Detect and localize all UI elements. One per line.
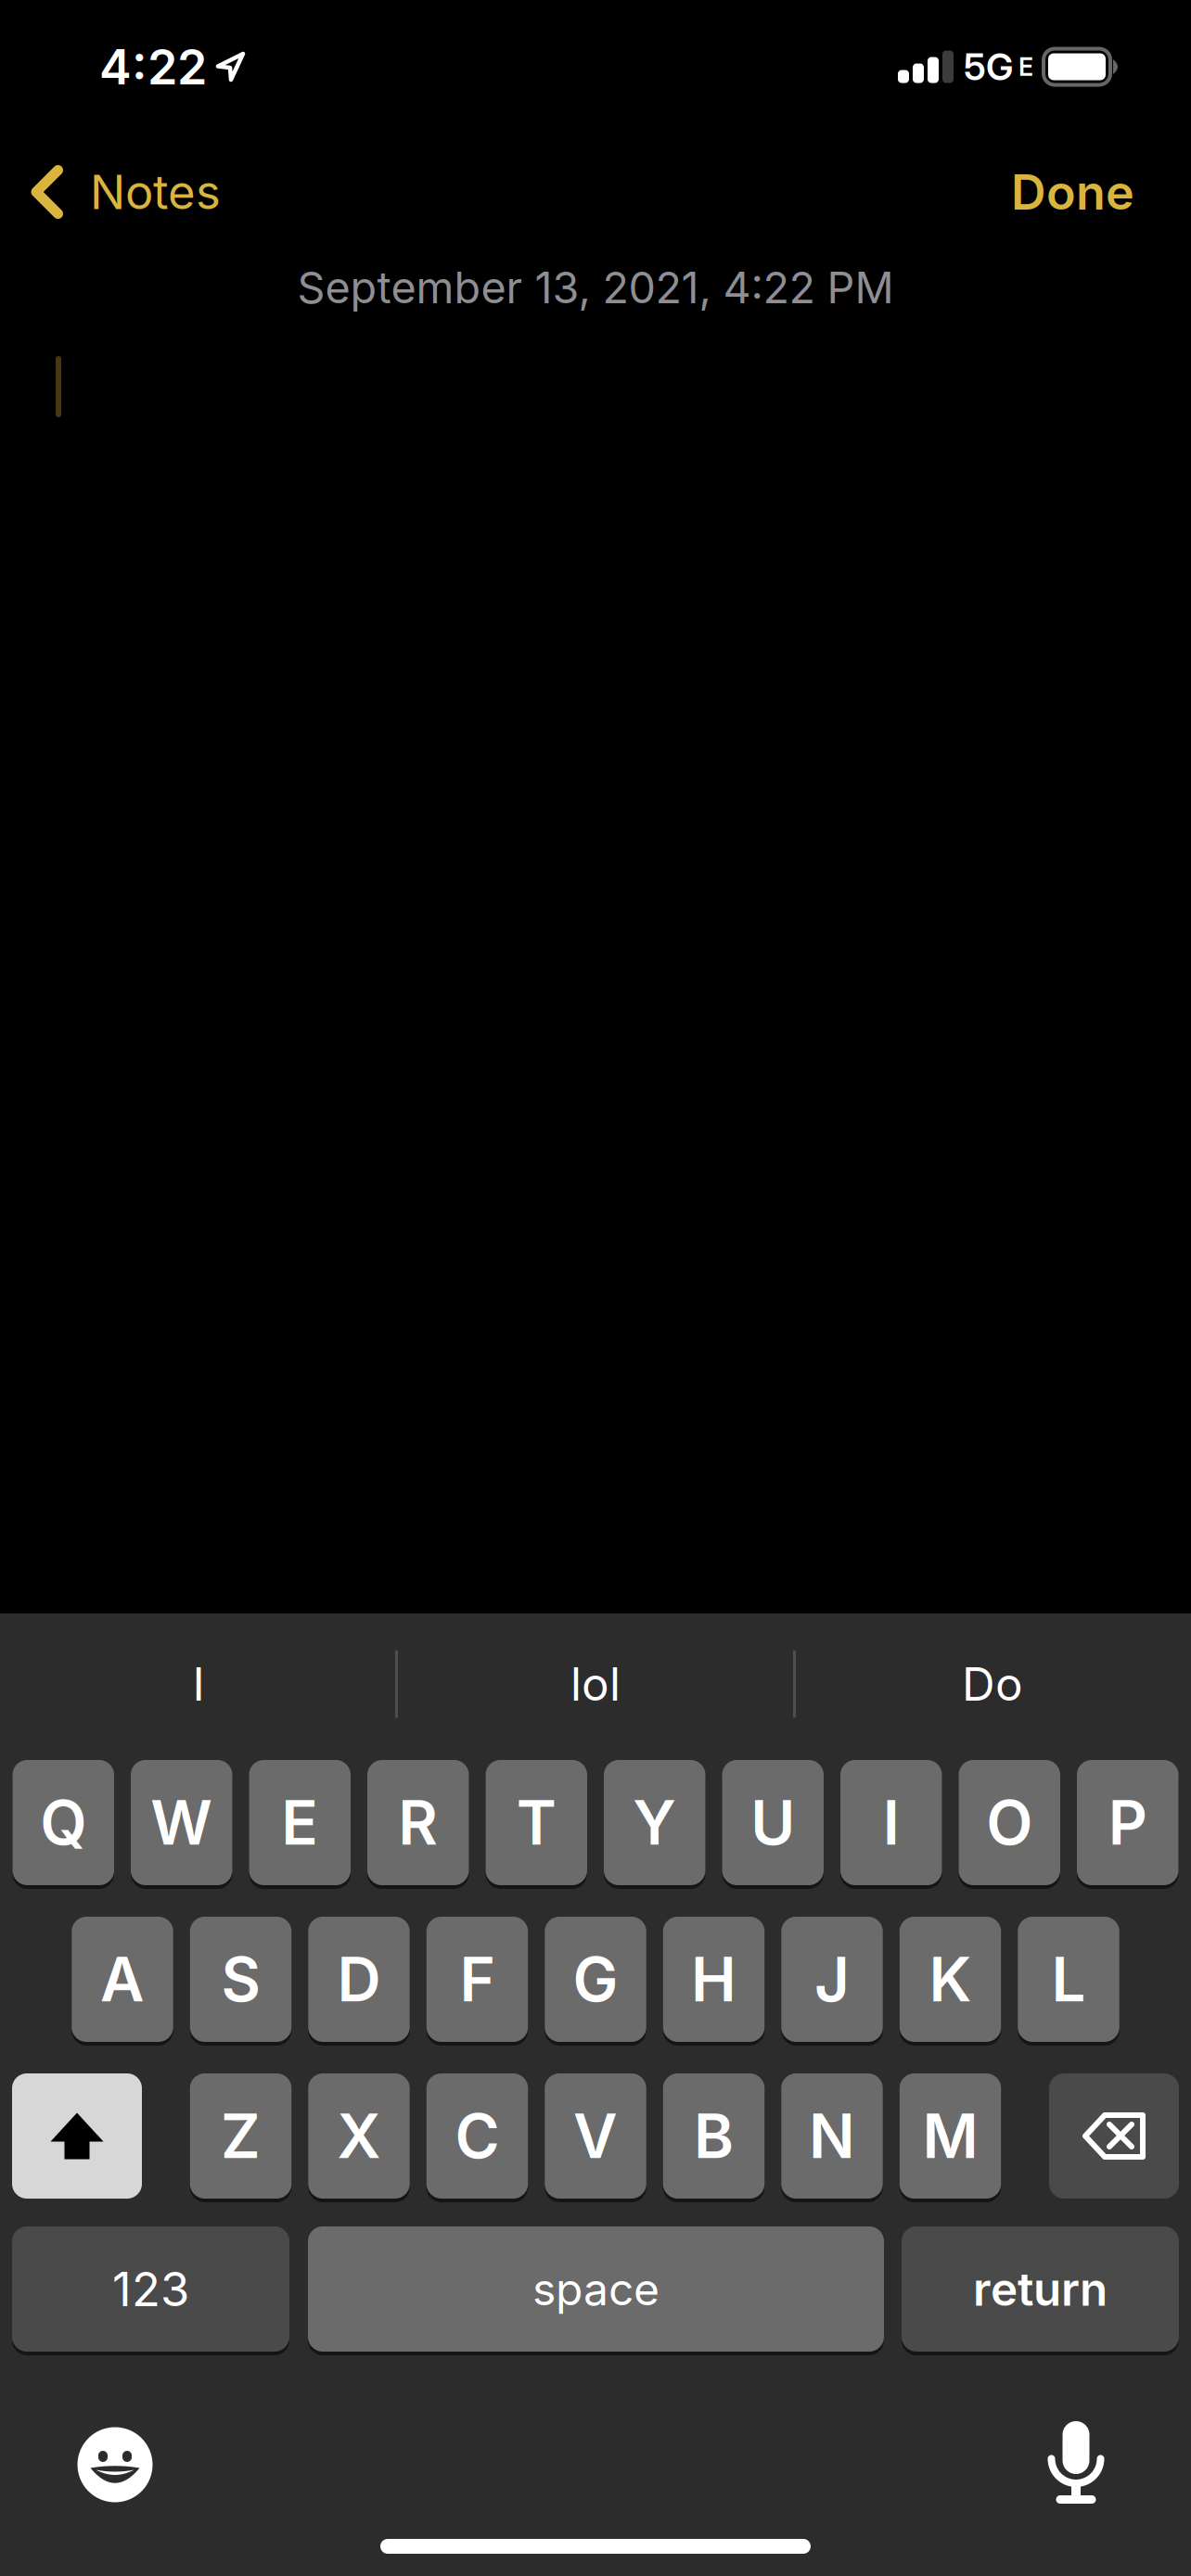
button[interactable]: N bbox=[781, 2073, 883, 2199]
staticText: G bbox=[573, 1943, 618, 2016]
staticText: Done bbox=[1011, 163, 1134, 221]
button[interactable]: I bbox=[0, 1633, 397, 1735]
staticText: 4:22 bbox=[99, 38, 207, 96]
staticText: X bbox=[337, 2099, 381, 2173]
staticText: S bbox=[221, 1943, 260, 2016]
staticText: N bbox=[809, 2099, 855, 2173]
staticText: O bbox=[986, 1786, 1033, 1859]
staticText: M bbox=[922, 2099, 978, 2173]
button[interactable]: E bbox=[249, 1760, 351, 1885]
button[interactable]: Shift bbox=[12, 2073, 142, 2199]
staticText: V bbox=[573, 2099, 618, 2173]
staticText: H bbox=[691, 1943, 736, 2016]
button[interactable]: return bbox=[902, 2226, 1179, 2352]
staticText: 5G bbox=[964, 44, 1013, 89]
button[interactable]: space bbox=[308, 2226, 884, 2352]
staticText: W bbox=[150, 1786, 213, 1859]
staticText: B bbox=[694, 2099, 734, 2173]
button[interactable]: U bbox=[722, 1760, 824, 1885]
button[interactable]: C bbox=[426, 2073, 528, 2199]
staticText: lol bbox=[570, 1656, 621, 1712]
staticText: Q bbox=[40, 1786, 86, 1859]
staticText: P bbox=[1108, 1786, 1147, 1859]
staticText: Do bbox=[962, 1656, 1023, 1712]
staticText: Y bbox=[633, 1786, 676, 1859]
button[interactable]: Dictate bbox=[1024, 2411, 1128, 2515]
button[interactable]: Done bbox=[983, 147, 1162, 236]
button[interactable]: lol bbox=[397, 1633, 794, 1735]
button[interactable]: B bbox=[663, 2073, 765, 2199]
button[interactable]: Y bbox=[604, 1760, 705, 1885]
button[interactable]: Z bbox=[190, 2073, 292, 2199]
staticText: I bbox=[883, 1786, 900, 1859]
staticText: September 13, 2021, 4:22 PM bbox=[297, 261, 894, 314]
staticText: T bbox=[516, 1786, 556, 1859]
staticText: Z bbox=[221, 2099, 261, 2173]
button[interactable]: A bbox=[72, 1917, 173, 2042]
button[interactable]: Delete bbox=[1049, 2073, 1179, 2199]
staticText: F bbox=[460, 1943, 495, 2016]
button[interactable]: F bbox=[426, 1917, 528, 2042]
staticText: L bbox=[1051, 1943, 1086, 2016]
staticText: Notes bbox=[90, 163, 221, 220]
staticText: U bbox=[751, 1786, 795, 1859]
button[interactable]: O bbox=[959, 1760, 1060, 1885]
staticText: K bbox=[929, 1943, 972, 2016]
button[interactable]: V bbox=[545, 2073, 646, 2199]
button[interactable]: P bbox=[1077, 1760, 1178, 1885]
button[interactable]: M bbox=[900, 2073, 1001, 2199]
button[interactable]: K bbox=[900, 1917, 1001, 2042]
button[interactable]: D bbox=[308, 1917, 410, 2042]
staticText: J bbox=[814, 1943, 850, 2016]
button[interactable]: G bbox=[545, 1917, 646, 2042]
button[interactable]: X bbox=[308, 2073, 410, 2199]
button[interactable]: Notes bbox=[0, 147, 243, 236]
button[interactable]: H bbox=[663, 1917, 765, 2042]
staticText: C bbox=[455, 2099, 499, 2173]
staticText: D bbox=[337, 1943, 381, 2016]
button[interactable]: T bbox=[486, 1760, 587, 1885]
button[interactable]: L bbox=[1018, 1917, 1119, 2042]
staticText: space bbox=[532, 2262, 660, 2316]
staticText: I bbox=[192, 1656, 205, 1712]
button[interactable]: W bbox=[131, 1760, 232, 1885]
button[interactable]: R bbox=[367, 1760, 469, 1885]
button[interactable]: Emoji bbox=[63, 2413, 167, 2517]
staticText: E bbox=[281, 1786, 318, 1859]
staticText: 123 bbox=[112, 2261, 189, 2317]
staticText: return bbox=[973, 2261, 1108, 2317]
button[interactable]: 123 bbox=[12, 2226, 289, 2352]
staticText: A bbox=[100, 1943, 145, 2016]
button[interactable]: Do bbox=[794, 1633, 1191, 1735]
button[interactable]: J bbox=[781, 1917, 883, 2042]
button[interactable]: I bbox=[840, 1760, 942, 1885]
staticText: E bbox=[1018, 52, 1033, 82]
button[interactable]: Q bbox=[13, 1760, 114, 1885]
button[interactable]: S bbox=[190, 1917, 292, 2042]
staticText: R bbox=[398, 1786, 438, 1859]
